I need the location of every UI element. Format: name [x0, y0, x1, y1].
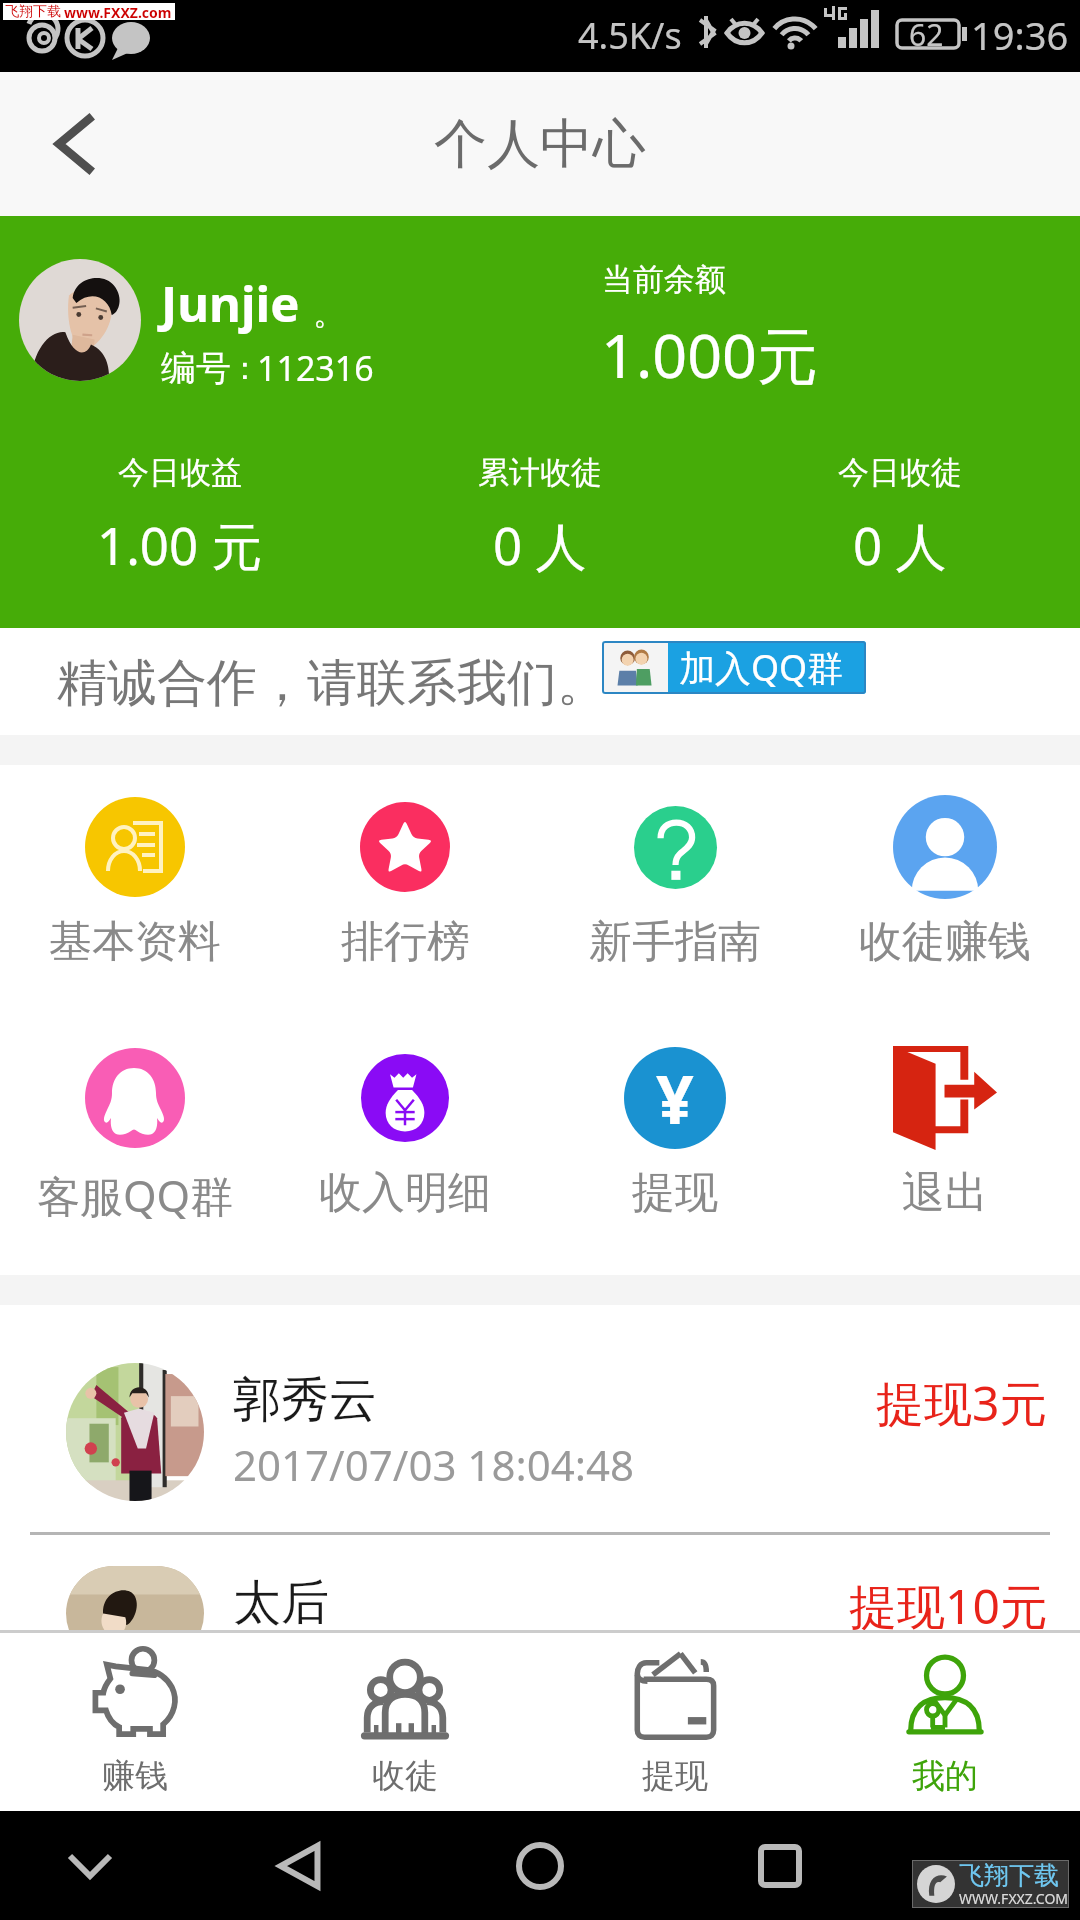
- button[interactable]: 排行榜: [270, 765, 540, 1016]
- staticText: 1.00 元: [97, 510, 263, 580]
- staticText: 编号: [161, 346, 231, 390]
- button[interactable]: 收徒: [270, 1633, 540, 1811]
- button[interactable]: 收徒赚钱: [810, 765, 1080, 1016]
- staticText: 19:36: [971, 9, 1069, 61]
- staticText: 退出: [902, 1166, 988, 1220]
- staticText: 新手指南: [589, 915, 761, 969]
- staticText: ：: [229, 348, 261, 388]
- staticText: 基本资料: [49, 915, 221, 969]
- staticText: 精诚合作，请联系我们。: [57, 652, 607, 715]
- staticText: www.FXXZ.com: [64, 3, 172, 20]
- button[interactable]: 太后: [0, 1535, 1080, 1630]
- button[interactable]: Back: [260, 1826, 340, 1906]
- staticText: 郭秀云: [233, 1370, 377, 1430]
- staticText: 1.000元: [601, 313, 818, 396]
- staticText: WWW.FXXZ.COM: [959, 1889, 1069, 1906]
- staticText: 加入QQ群: [679, 643, 844, 692]
- staticText: 飞翔下载: [5, 3, 61, 20]
- button[interactable]: 新手指南: [540, 765, 810, 1016]
- staticText: 2017/07/03 18:04:48: [233, 1436, 635, 1493]
- button[interactable]: Home: [500, 1826, 580, 1906]
- button[interactable]: 加入QQ群: [602, 641, 866, 694]
- button[interactable]: [19, 259, 141, 381]
- button[interactable]: 郭秀云: [0, 1332, 1080, 1532]
- staticText: 提现: [632, 1166, 718, 1220]
- button[interactable]: Recents: [740, 1826, 820, 1906]
- button[interactable]: 我的: [810, 1633, 1080, 1811]
- staticText: 赚钱: [102, 1755, 168, 1797]
- button[interactable]: 基本资料: [0, 765, 270, 1016]
- button[interactable]: Back: [0, 72, 148, 216]
- staticText: 今日收徒: [838, 453, 962, 492]
- button[interactable]: 收入明细: [270, 1016, 540, 1267]
- staticText: 我的: [912, 1755, 978, 1797]
- button[interactable]: 赚钱: [0, 1633, 270, 1811]
- staticText: 飞翔下载: [959, 1860, 1059, 1891]
- staticText: 收徒: [372, 1755, 438, 1797]
- staticText: 提现: [642, 1755, 708, 1797]
- staticText: 当前余额: [602, 260, 726, 299]
- staticText: 排行榜: [341, 915, 470, 969]
- button[interactable]: ¥: [540, 1016, 810, 1267]
- button[interactable]: 退出: [810, 1016, 1080, 1267]
- staticText: 112316: [257, 345, 374, 391]
- staticText: 个人中心: [434, 111, 646, 178]
- button[interactable]: Hide keyboard: [50, 1826, 130, 1906]
- staticText: 62: [909, 14, 944, 55]
- button[interactable]: 客服QQ群: [0, 1016, 270, 1267]
- staticText: 0 人: [493, 510, 587, 580]
- staticText: 客服QQ群: [37, 1166, 234, 1225]
- staticText: 收入明细: [319, 1166, 491, 1220]
- staticText: 太后: [233, 1573, 329, 1630]
- staticText: 累计收徒: [478, 453, 602, 492]
- staticText: 今日收益: [118, 453, 242, 492]
- staticText: 0 人: [853, 510, 947, 580]
- staticText: 4.5K/s: [578, 11, 682, 60]
- staticText: 提现10元: [849, 1573, 1048, 1630]
- staticText: 提现3元: [876, 1370, 1048, 1436]
- button[interactable]: 提现: [540, 1633, 810, 1811]
- staticText: Junjie: [161, 270, 300, 337]
- staticText: 。: [313, 292, 346, 334]
- staticText: ¥: [656, 1053, 694, 1143]
- staticText: 收徒赚钱: [859, 915, 1031, 969]
